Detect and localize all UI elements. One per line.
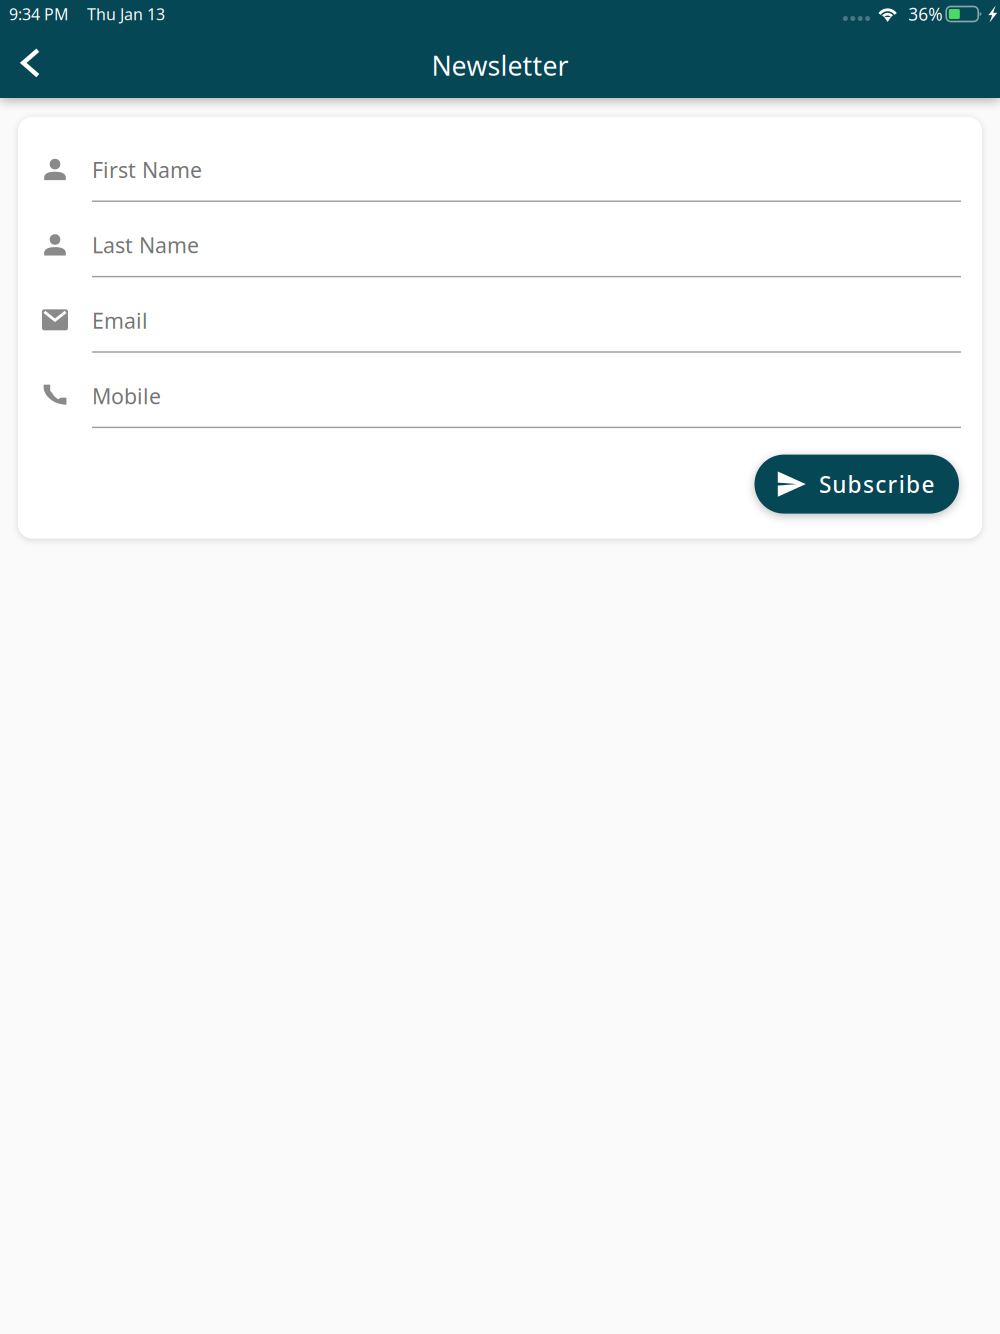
staticText: Last Name [92,231,199,259]
staticText: Subscribe [819,469,934,499]
staticText: 36% [908,2,942,25]
staticText: Mobile [92,382,161,410]
staticText: Newsletter [431,48,568,83]
staticText: 9:34 PM [9,3,69,25]
button[interactable]: Subscribe [754,455,959,514]
staticText: First Name [92,155,202,184]
button[interactable]: Last Name [18,192,982,268]
button[interactable]: First Name [18,117,982,192]
staticText: Thu Jan 13 [87,3,165,25]
button[interactable]: Back [0,36,55,90]
button[interactable]: Mobile [18,343,982,419]
button[interactable]: Email [18,268,982,343]
staticText: Email [92,306,148,335]
